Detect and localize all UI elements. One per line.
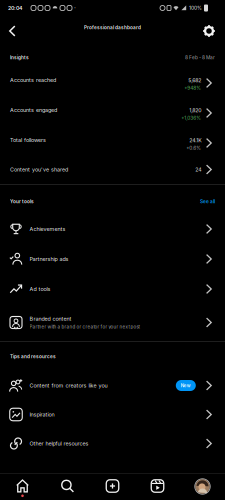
staticText: Ad tools: [29, 286, 50, 292]
staticText: Tips and resources: [10, 354, 56, 359]
staticText: Partner with a brand or creator for your…: [29, 324, 139, 329]
button[interactable]: New post: [90, 474, 135, 500]
staticText: 5,682: [188, 77, 201, 83]
staticText: Accounts engaged: [10, 107, 57, 113]
button[interactable]: Achievements: [0, 214, 225, 244]
staticText: New: [181, 383, 191, 388]
staticText: Partnership ads: [29, 256, 68, 262]
staticText: +0.6%: [186, 145, 201, 151]
button[interactable]: Profile: [180, 474, 225, 500]
button[interactable]: See all: [200, 199, 215, 204]
button[interactable]: Accounts engaged: [0, 95, 225, 125]
button[interactable]: Content you've shared: [0, 155, 225, 184]
staticText: ·: [74, 4, 76, 12]
staticText: Content you've shared: [10, 166, 68, 173]
button[interactable]: Ad tools: [0, 274, 225, 304]
staticText: Other helpful resources: [29, 440, 88, 447]
staticText: Your tools: [10, 199, 34, 204]
staticText: Professional dashboard: [84, 25, 141, 30]
staticText: See all: [200, 199, 215, 204]
staticText: Inspiration: [29, 411, 54, 418]
staticText: Achievements: [29, 226, 65, 232]
button[interactable]: Inspiration: [0, 400, 225, 429]
staticText: Accounts reached: [10, 77, 56, 83]
button[interactable]: Partnership ads: [0, 244, 225, 274]
staticText: Insights: [10, 55, 29, 60]
button[interactable]: Home: [0, 474, 45, 500]
button[interactable]: Back: [0, 16, 16, 43]
staticText: +1,036%: [181, 115, 201, 121]
button[interactable]: Content from creators like you: [0, 371, 225, 400]
button[interactable]: Accounts reached: [0, 65, 225, 95]
staticText: 20:04: [8, 5, 22, 11]
staticText: 24: [195, 166, 201, 173]
staticText: +948%: [184, 85, 201, 91]
staticText: Content from creators like you: [29, 382, 107, 389]
button[interactable]: Total followers: [0, 125, 225, 155]
button[interactable]: Settings: [203, 16, 225, 44]
staticText: 1,820: [189, 107, 201, 113]
button[interactable]: Branded content: [0, 304, 225, 341]
staticText: 100%: [189, 5, 202, 11]
staticText: Branded content: [29, 315, 71, 322]
button[interactable]: Other helpful resources: [0, 429, 225, 458]
staticText: 8 Feb - 8 Mar: [185, 55, 215, 60]
button[interactable]: Reels: [135, 474, 180, 500]
staticText: Total followers: [10, 137, 46, 143]
button[interactable]: Search: [45, 474, 90, 500]
staticText: 24.1K: [189, 137, 201, 143]
